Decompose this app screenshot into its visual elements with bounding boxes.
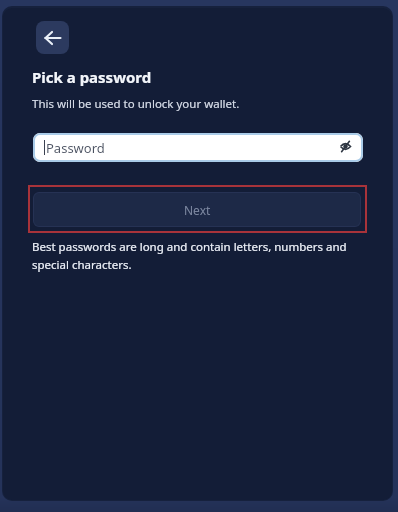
staticText: Next bbox=[184, 202, 211, 218]
button[interactable] bbox=[36, 21, 69, 54]
staticText: Best passwords are long and contain lett… bbox=[32, 239, 347, 255]
staticText: Pick a password bbox=[32, 67, 152, 87]
staticText: This will be used to unlock your wallet. bbox=[32, 96, 240, 112]
button[interactable]: Password bbox=[33, 133, 363, 162]
button[interactable]: Next bbox=[33, 192, 361, 227]
staticText: Password bbox=[46, 139, 105, 157]
staticText: special characters. bbox=[32, 257, 132, 273]
